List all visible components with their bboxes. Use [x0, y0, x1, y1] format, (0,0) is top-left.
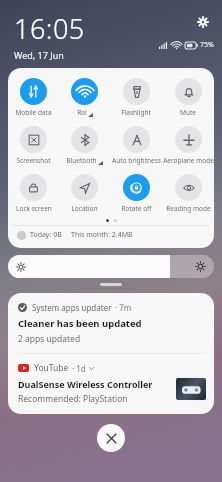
staticText: Ro!	[77, 108, 87, 117]
staticText: Flashlight	[121, 108, 151, 117]
staticText: 75%	[200, 40, 214, 50]
button[interactable]: Rotate off	[110, 171, 162, 216]
button[interactable]: Location	[59, 171, 110, 216]
staticText: System apps updater	[32, 302, 112, 313]
staticText: This month: 2.4MB	[71, 230, 133, 240]
staticText: Auto brightness	[112, 156, 161, 165]
button[interactable]: Reading mode	[162, 171, 214, 216]
button[interactable]: Mute	[162, 75, 214, 120]
button[interactable]: YouTube	[8, 354, 214, 414]
staticText: Wed, 17 Jun	[14, 49, 64, 61]
staticText: Lock screen	[16, 204, 52, 213]
button[interactable]: Brightness	[8, 255, 214, 278]
button[interactable]: Lock screen	[8, 171, 59, 216]
button[interactable]: Mobile data	[8, 75, 59, 120]
button[interactable]: Settings	[193, 12, 213, 32]
button[interactable]: Today: 0B	[8, 226, 214, 244]
staticText: Rotate off	[121, 204, 152, 213]
button[interactable]: Bluetooth	[59, 123, 110, 168]
button[interactable]: Ro!	[59, 75, 110, 120]
staticText: 16:05	[14, 10, 85, 47]
staticText: Location	[71, 204, 98, 213]
staticText: Mobile data	[15, 108, 52, 117]
staticText: Screenshot	[16, 156, 51, 165]
staticText: Bluetooth	[66, 156, 97, 165]
staticText: · 1d	[72, 363, 86, 374]
staticText: DualSense Wireless Controller Video | PS…	[18, 378, 172, 390]
button[interactable]: System apps updater	[8, 293, 214, 353]
staticText: Aeroplane mode	[163, 156, 214, 165]
staticText: · 7m	[115, 302, 132, 313]
staticText: Today: 0B	[30, 230, 62, 240]
staticText: 2 apps updated	[18, 333, 81, 345]
staticText: Cleaner has been updated	[18, 317, 142, 330]
staticText: Recommended: PlayStation	[18, 393, 128, 405]
staticText: YouTube	[34, 362, 69, 374]
button[interactable]: Screenshot	[8, 123, 59, 168]
button[interactable]: Auto brightness	[110, 123, 162, 168]
staticText: Reading mode	[166, 204, 211, 213]
button[interactable]: Close	[97, 424, 125, 452]
button[interactable]: Aeroplane mode	[162, 123, 214, 168]
staticText: Mute	[180, 108, 196, 117]
button[interactable]: Flashlight	[110, 75, 162, 120]
